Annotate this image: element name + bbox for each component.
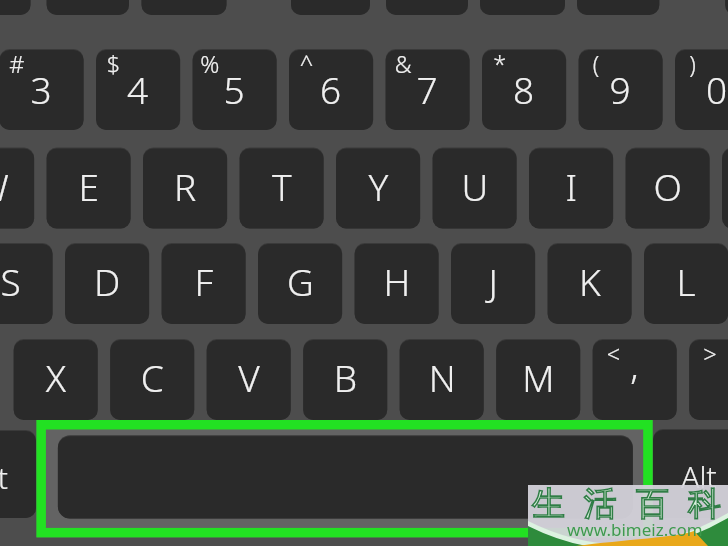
button[interactable]: Function key 5 (386, 0, 468, 15)
button[interactable]: Left Alt key (0, 430, 36, 518)
button[interactable]: Key H (355, 243, 439, 324)
button[interactable]: Key O (626, 148, 710, 229)
button[interactable]: Key G (258, 243, 342, 324)
button[interactable]: Key Y (336, 148, 420, 229)
button[interactable]: Key V (207, 339, 291, 420)
button[interactable]: Right Alt key (653, 429, 728, 518)
button[interactable]: Key C (110, 339, 194, 420)
button[interactable]: Key R (143, 148, 227, 229)
button[interactable]: Key 7 (386, 49, 470, 130)
button[interactable]: Key 8 (482, 49, 566, 130)
button[interactable]: Key X (14, 339, 98, 420)
button[interactable]: Key U (433, 148, 517, 229)
button[interactable]: Key S (0, 243, 53, 324)
button[interactable]: Function key 2 (47, 0, 129, 15)
button[interactable]: Key . (689, 339, 728, 420)
button[interactable]: Key 5 (193, 49, 277, 130)
button[interactable]: Key K (548, 243, 632, 324)
button[interactable]: Key M (496, 339, 580, 420)
button[interactable]: Key , (593, 339, 677, 420)
button[interactable]: Key W (0, 148, 34, 229)
button[interactable]: Function key 3 (142, 0, 227, 15)
button[interactable]: Key B (303, 339, 387, 420)
button[interactable]: Key T (240, 148, 324, 229)
button[interactable]: Function key 4 (291, 0, 370, 15)
button[interactable]: Function key 1 (0, 0, 31, 15)
button[interactable]: Key 0 (675, 49, 728, 130)
button[interactable]: Space bar (36, 420, 652, 537)
button[interactable]: Key 3 (0, 49, 84, 130)
button[interactable]: Key L (644, 243, 728, 324)
button[interactable]: Function key 8 (725, 0, 728, 15)
button[interactable]: bimeiz.com watermark (528, 485, 728, 546)
button[interactable]: Key E (47, 148, 131, 229)
button[interactable]: Key 9 (579, 49, 663, 130)
button[interactable]: Key 4 (96, 49, 180, 130)
button[interactable]: Key J (451, 243, 535, 324)
button[interactable]: Key F (162, 243, 246, 324)
button[interactable]: Key D (65, 243, 149, 324)
button[interactable]: Key P (722, 148, 728, 229)
button[interactable]: Key I (529, 148, 613, 229)
button[interactable]: Key N (400, 339, 484, 420)
button[interactable]: Function key 6 (480, 0, 565, 15)
button[interactable]: Key 6 (289, 49, 373, 130)
button[interactable]: Function key 7 (577, 0, 659, 15)
